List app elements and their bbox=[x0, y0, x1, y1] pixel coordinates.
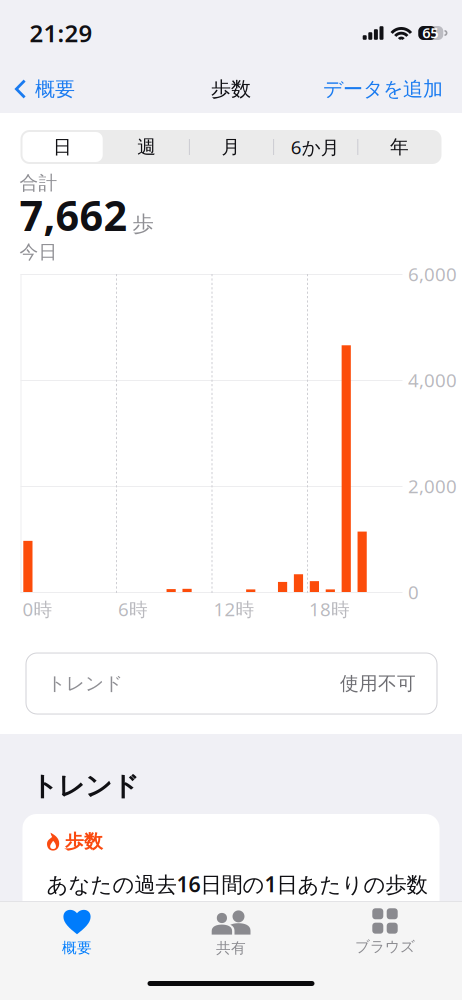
button[interactable]: 概要 bbox=[0, 906, 154, 958]
staticText: 0 bbox=[408, 580, 419, 604]
button[interactable]: 週 bbox=[105, 130, 189, 164]
staticText: 週 bbox=[137, 135, 156, 158]
staticText: 合計 bbox=[19, 171, 57, 194]
button[interactable]: 年 bbox=[357, 130, 441, 164]
button[interactable]: 共有 bbox=[154, 906, 308, 958]
staticText: 日 bbox=[53, 135, 72, 158]
staticText: 65 bbox=[422, 23, 438, 42]
staticText: 21:29 bbox=[29, 17, 92, 49]
button[interactable]: 6か月 bbox=[273, 130, 357, 164]
staticText: 6時 bbox=[118, 597, 148, 621]
staticText: 使用不可 bbox=[340, 672, 416, 695]
staticText: 共有 bbox=[216, 939, 246, 957]
staticText: 0時 bbox=[22, 597, 52, 621]
staticText: 概要 bbox=[62, 939, 92, 957]
staticText: 概要 bbox=[35, 77, 75, 101]
button[interactable]: 日 bbox=[20, 130, 105, 164]
staticText: 歩 bbox=[132, 211, 153, 237]
button[interactable]: データを追加 bbox=[323, 67, 449, 111]
staticText: 12時 bbox=[213, 597, 254, 621]
staticText: 今日 bbox=[19, 240, 57, 263]
staticText: 4,000 bbox=[408, 368, 457, 392]
staticText: 18時 bbox=[309, 597, 350, 621]
staticText: 7,662 bbox=[19, 188, 127, 242]
staticText: あなたの過去16日間の1日あたりの歩数 bbox=[46, 870, 427, 898]
button[interactable]: 月 bbox=[189, 130, 273, 164]
staticText: ブラウズ bbox=[355, 938, 415, 956]
staticText: 6か月 bbox=[291, 135, 340, 159]
staticText: トレンド bbox=[31, 770, 139, 802]
button[interactable]: ブラウズ bbox=[308, 906, 462, 958]
staticText: データを追加 bbox=[323, 77, 443, 101]
staticText: トレンド bbox=[47, 672, 123, 695]
staticText: 6,000 bbox=[408, 262, 457, 286]
staticText: 2,000 bbox=[408, 474, 457, 498]
button[interactable]: 概要 bbox=[12, 67, 90, 111]
staticText: 年 bbox=[390, 135, 409, 158]
staticText: 歩数 bbox=[65, 830, 103, 853]
staticText: 歩数 bbox=[211, 77, 251, 101]
staticText: 月 bbox=[221, 135, 240, 158]
button[interactable]: トレンド bbox=[26, 653, 437, 714]
